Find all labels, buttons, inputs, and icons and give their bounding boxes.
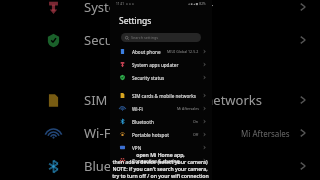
staticText: Mi Aftersales [241, 128, 290, 139]
staticText: Search settings [131, 35, 159, 40]
button[interactable]: Search settings [121, 33, 201, 42]
staticText: System apps updater [132, 62, 179, 68]
staticText: Security status [132, 75, 165, 81]
staticText: On [193, 119, 199, 124]
button[interactable]: Bluetooth [110, 115, 212, 128]
button[interactable]: System apps updater [110, 58, 212, 71]
staticText: SIM cards & mobile networks [132, 93, 197, 99]
staticText: MIUI Global 12.5.2 [167, 49, 199, 54]
button[interactable]: About phone [110, 45, 212, 58]
staticText: ◂ ▪ ▴ ◼ 82% [188, 2, 206, 6]
staticText: Mi Aftersales [177, 106, 199, 111]
button[interactable]: VPN [110, 141, 212, 154]
staticText: VPN [132, 145, 142, 151]
staticText: Security status [84, 31, 174, 49]
button[interactable]: SIM cards & mobile networks [110, 89, 212, 102]
staticText: Bluetooth [84, 157, 145, 175]
staticText: System apps updater [84, 0, 214, 16]
button[interactable]: Security status [110, 71, 212, 84]
staticText: try to turn off / on your wifi connectio… [112, 172, 209, 179]
button[interactable]: Wi-Fi [110, 102, 212, 115]
staticText: SIM cards & mobile networks [84, 91, 262, 109]
button[interactable]: Portable hotspot [110, 128, 212, 141]
staticText: Bluetooth [132, 119, 154, 125]
staticText: Connection & sharing [132, 158, 180, 164]
staticText: 11:21 ▫ ▫ ▫ [116, 2, 134, 6]
staticText: Portable hotspot [132, 132, 169, 138]
staticText: NOTE: if you can't search your camera, [112, 165, 208, 172]
staticText: open Mi Home app, [136, 151, 185, 158]
staticText: About phone [132, 49, 161, 55]
staticText: Wi-Fi [132, 106, 143, 112]
staticText: Settings [119, 15, 152, 27]
button[interactable]: Connection & sharing [110, 154, 212, 167]
staticText: then add a device (select your camera) [112, 158, 208, 165]
staticText: Wi-Fi [84, 124, 114, 142]
staticText: Off [193, 132, 199, 137]
